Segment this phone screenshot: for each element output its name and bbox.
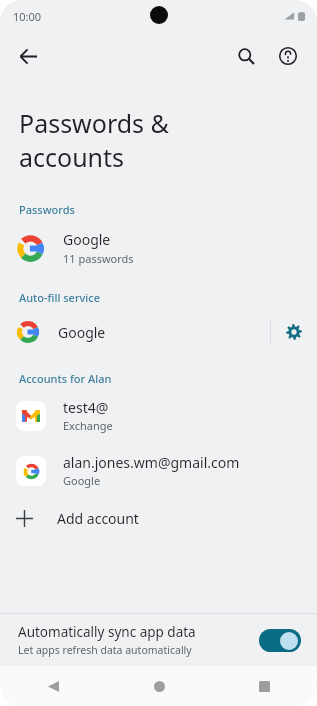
button[interactable]: Autofill settings: [271, 309, 317, 355]
staticText: 11 passwords: [63, 251, 134, 266]
button[interactable]: Back: [6, 34, 50, 78]
button[interactable]: Recent apps: [244, 666, 284, 706]
staticText: 10:00: [13, 9, 42, 24]
button[interactable]: Help: [267, 35, 309, 77]
staticText: Passwords &: [19, 106, 169, 140]
staticText: Accounts for Alan: [19, 371, 112, 386]
button[interactable]: Back: [33, 666, 73, 706]
staticText: Google: [58, 323, 106, 342]
button[interactable]: alan.jones.wm@gmail.com: [0, 447, 317, 494]
staticText: Google: [63, 473, 101, 488]
button[interactable]: Add account: [0, 500, 317, 537]
staticText: alan.jones.wm@gmail.com: [63, 453, 240, 472]
staticText: Automatically sync app data: [18, 623, 196, 641]
staticText: Let apps refresh data automatically: [18, 643, 192, 657]
button[interactable]: Search: [225, 35, 267, 77]
staticText: Auto-fill service: [19, 290, 101, 305]
staticText: accounts: [19, 140, 125, 174]
button[interactable]: Automatically sync app data: [0, 614, 317, 666]
staticText: test4@: [63, 398, 109, 417]
button[interactable]: test4@: [0, 392, 317, 439]
button[interactable]: Home: [139, 666, 179, 706]
staticText: Exchange: [63, 418, 113, 433]
button[interactable]: Google: [0, 310, 270, 354]
button[interactable]: Google: [0, 224, 317, 272]
staticText: Add account: [57, 509, 139, 528]
staticText: Passwords: [19, 202, 75, 217]
staticText: Google: [63, 230, 111, 249]
